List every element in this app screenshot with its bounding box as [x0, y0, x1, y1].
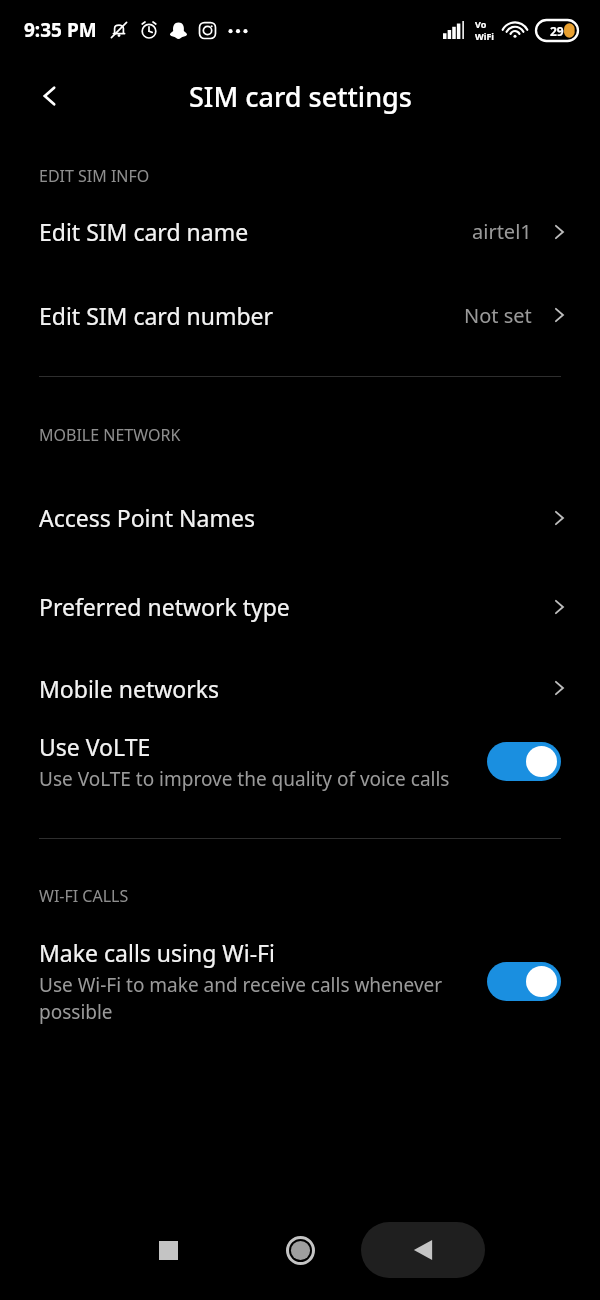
staticText: EDIT SIM INFO	[39, 165, 150, 187]
button[interactable]: Preferred network type	[0, 562, 600, 651]
button[interactable]: Toggle	[487, 962, 561, 1001]
staticText: Not set	[464, 302, 532, 329]
button[interactable]: Use VoLTE	[0, 725, 600, 798]
button[interactable]: Back	[18, 64, 82, 128]
staticText: Make calls using Wi-Fi	[39, 937, 275, 968]
button[interactable]: Mobile networks	[0, 651, 600, 725]
staticText: WI-FI CALLS	[39, 885, 129, 907]
button[interactable]: Toggle	[487, 742, 561, 781]
button[interactable]: Back	[361, 1222, 485, 1278]
button[interactable]: Edit SIM card number	[0, 276, 600, 354]
staticText: Edit SIM card name	[39, 216, 472, 247]
staticText: MOBILE NETWORK	[39, 424, 181, 446]
staticText: Vo	[475, 18, 487, 30]
button[interactable]: Make calls using Wi-Fi	[0, 931, 600, 1031]
staticText: Use VoLTE to improve the quality of voic…	[39, 766, 450, 792]
staticText: airtel1	[472, 218, 532, 245]
staticText: 9:35 PM	[24, 17, 97, 43]
staticText: 29	[550, 23, 564, 39]
staticText: WiFi	[475, 30, 495, 42]
button[interactable]: Home	[272, 1222, 328, 1278]
staticText: Use Wi-Fi to make and receive calls when…	[39, 972, 469, 1025]
staticText: Preferred network type	[39, 591, 548, 622]
staticText: Mobile networks	[39, 673, 548, 704]
button[interactable]: Edit SIM card name	[0, 187, 600, 276]
staticText: SIM card settings	[189, 78, 412, 115]
staticText: Access Point Names	[39, 502, 548, 533]
button[interactable]: Access Point Names	[0, 473, 600, 562]
button[interactable]: Recent apps	[140, 1222, 196, 1278]
staticText: Use VoLTE	[39, 731, 151, 762]
staticText: Edit SIM card number	[39, 300, 464, 331]
